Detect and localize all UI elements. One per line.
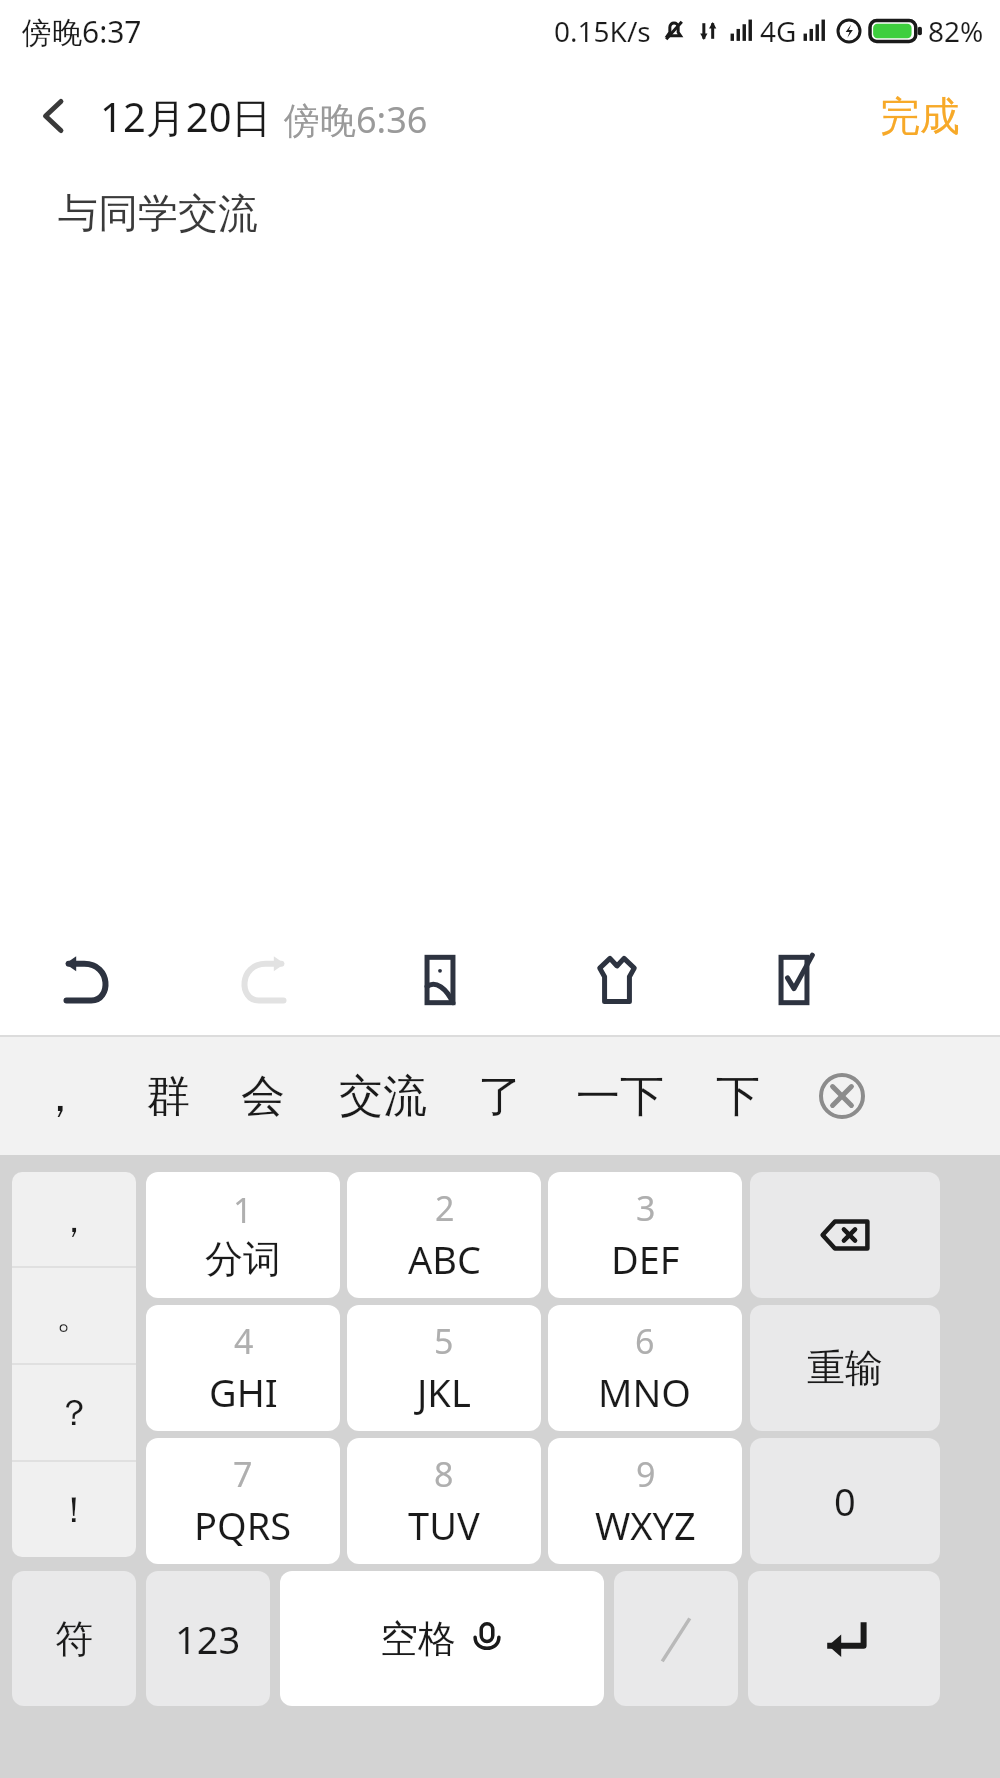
staticText: ABC — [408, 1233, 481, 1285]
staticText: GHI — [209, 1366, 278, 1418]
staticText: 0 — [834, 1475, 856, 1527]
button[interactable]: ？ — [12, 1365, 136, 1460]
staticText: 82% — [928, 12, 984, 50]
button[interactable]: 1 — [146, 1172, 340, 1298]
staticText: ， — [38, 1069, 82, 1124]
staticText: MNO — [598, 1366, 692, 1418]
staticText: WXYZ — [595, 1499, 696, 1551]
staticText: 4G — [760, 12, 797, 50]
button[interactable]: 下 — [686, 1037, 790, 1155]
button[interactable]: 一下 — [568, 1037, 672, 1155]
staticText: 与同学交流 — [58, 188, 258, 238]
staticText: 1 — [233, 1187, 253, 1233]
button[interactable]: 重输 — [750, 1305, 940, 1431]
button[interactable]: Undo — [42, 935, 132, 1025]
button[interactable]: 符 — [12, 1571, 136, 1706]
staticText: 。 — [56, 1293, 92, 1338]
staticText: DEF — [611, 1233, 680, 1285]
staticText: 了 — [478, 1069, 522, 1124]
staticText: 0.15K/s — [554, 12, 651, 50]
button[interactable]: 6 — [548, 1305, 742, 1431]
button[interactable]: 3 — [548, 1172, 742, 1298]
staticText: JKL — [417, 1366, 471, 1418]
button[interactable]: 123 — [146, 1571, 270, 1706]
staticText: 群 — [146, 1069, 190, 1124]
staticText: 2 — [435, 1185, 455, 1231]
button[interactable]: Enter — [748, 1571, 940, 1706]
button[interactable]: 5 — [347, 1305, 541, 1431]
button[interactable]: 空格 — [280, 1571, 604, 1706]
staticText: 4 — [234, 1318, 254, 1364]
button[interactable]: 交流 — [331, 1037, 435, 1155]
staticText: 6 — [635, 1318, 655, 1364]
staticText: PQRS — [194, 1499, 292, 1551]
button[interactable]: 群 — [116, 1037, 220, 1155]
button[interactable]: 2 — [347, 1172, 541, 1298]
button[interactable]: 了 — [448, 1037, 552, 1155]
staticText: 12月20日 — [100, 89, 272, 144]
staticText: 傍晚6:37 — [22, 11, 142, 52]
staticText: 8 — [434, 1451, 454, 1497]
staticText: 傍晚6:36 — [284, 95, 428, 144]
button[interactable]: 完成 — [874, 83, 966, 149]
staticText: ， — [56, 1197, 92, 1242]
button[interactable]: Backspace — [750, 1172, 940, 1298]
button[interactable]: Switch language — [614, 1571, 738, 1706]
staticText: 7 — [233, 1451, 253, 1497]
button[interactable]: 4 — [146, 1305, 340, 1431]
staticText: 下 — [716, 1069, 760, 1124]
button[interactable]: 0 — [750, 1438, 940, 1564]
button[interactable]: 。 — [12, 1268, 136, 1363]
staticText: 9 — [636, 1451, 656, 1497]
staticText: TUV — [408, 1499, 480, 1551]
button[interactable]: 7 — [146, 1438, 340, 1564]
staticText: 分词 — [205, 1235, 281, 1283]
button[interactable]: Checklist — [749, 935, 839, 1025]
staticText: ！ — [56, 1487, 92, 1532]
staticText: 交流 — [339, 1069, 427, 1124]
staticText: 重输 — [807, 1344, 883, 1392]
button[interactable]: ， — [8, 1037, 112, 1155]
staticText: 会 — [241, 1069, 285, 1124]
staticText: 一下 — [576, 1069, 664, 1124]
staticText: 符 — [55, 1615, 93, 1663]
staticText: 空格 — [380, 1615, 456, 1663]
button[interactable]: Back — [22, 85, 84, 147]
button[interactable]: 9 — [548, 1438, 742, 1564]
button[interactable]: Close candidates — [802, 1056, 882, 1136]
button[interactable]: 8 — [347, 1438, 541, 1564]
staticText: ？ — [56, 1390, 92, 1435]
button[interactable]: Redo — [218, 935, 308, 1025]
staticText: 5 — [434, 1318, 454, 1364]
button[interactable]: 会 — [211, 1037, 315, 1155]
button[interactable]: ， — [12, 1172, 136, 1266]
staticText: 完成 — [880, 91, 960, 141]
staticText: 123 — [175, 1613, 241, 1665]
staticText: 3 — [636, 1185, 656, 1231]
button[interactable]: ！ — [12, 1462, 136, 1557]
button[interactable]: Insert image — [395, 935, 485, 1025]
button[interactable]: Theme — [572, 935, 662, 1025]
